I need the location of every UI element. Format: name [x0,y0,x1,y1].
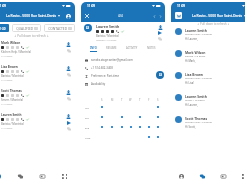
staticText: T [139,98,141,102]
staticText: Applied 11/1/2022 [96,38,117,41]
button[interactable]: Qualify [65,89,72,96]
button[interactable]: Mark Wilson [171,48,245,70]
button[interactable]: Lauren Smith [171,92,245,114]
staticText: 11:09 [87,4,96,8]
staticText: PM [85,116,89,119]
staticText: LS [86,26,90,30]
staticText: Hi Lauren, [185,103,198,107]
staticText: 11/1/2022 [1,102,13,105]
staticText: EVE [85,126,90,129]
staticText: QUALIFIED (0) [16,26,38,30]
staticText: Lisa Brown [185,72,203,76]
button[interactable]: CONTACTED (0) [44,24,75,32]
staticText: Kitchen Help / La Resto [185,120,213,123]
button[interactable]: Lisa Brown [0,63,75,87]
staticText: W [129,98,132,102]
staticText: Barista / Montréal [1,122,24,126]
button[interactable]: Qualify [65,65,72,72]
staticText: Kitchen Help / La Resto [185,32,213,35]
staticText: Scott Thomas [1,89,22,93]
button[interactable]: Chat with Lauren Smith [156,71,164,79]
button[interactable]: People [171,170,192,183]
button[interactable]: Previous [151,13,157,19]
staticText: NITE [85,136,91,139]
button[interactable]: Close [83,12,91,20]
staticText: sandra.stage.writer@gmail.com [91,58,133,62]
staticText: Preference: Part-time [91,74,119,78]
staticText: Availability [91,82,106,86]
button[interactable]: Message [157,36,163,42]
staticText: NEW (4) [0,26,6,30]
staticText: Mark Wilson [1,41,21,45]
staticText: La Resto - 5000 Rue Saint-Denis [192,13,243,18]
button[interactable]: Message [66,126,72,132]
staticText: Lisa Brown [1,65,18,69]
staticText: 11/1/2022 [1,54,13,57]
staticText: Barista / La Resto [185,54,206,57]
button[interactable]: People [0,170,9,183]
staticText: Hi Mark, [185,59,196,63]
button[interactable]: NOTES [147,46,156,52]
button[interactable]: Scott Thomas [171,114,245,136]
button[interactable]: Jobs [31,170,53,183]
button[interactable]: Mark Wilson [0,39,75,63]
staticText: F [148,98,150,102]
button[interactable]: Next [157,13,163,19]
staticText: INFO [90,46,97,50]
button[interactable]: INFO [90,46,97,52]
staticText: Server / Montréal [1,98,23,102]
staticText: LS [159,73,162,77]
button[interactable]: QUALIFIED (0) [12,24,41,32]
button[interactable]: Scott Thomas [0,87,75,111]
button[interactable]: Message [66,96,72,102]
staticText: Hi Lauren, [185,37,198,41]
staticText: AM [85,106,89,109]
staticText: 11:09 [0,4,7,8]
button[interactable]: Chat [192,170,213,183]
staticText: Mark Wilson [185,50,206,54]
staticText: 4/4 [118,14,123,18]
staticText: Kitchen Help / Montréal [1,50,31,54]
button[interactable]: Message [66,48,72,54]
button[interactable]: Lauren Smith [171,26,245,48]
button[interactable]: Message [66,72,72,78]
staticText: NOTES [147,46,156,50]
staticText: ↓ Pull down to refresh ↓ [197,22,230,26]
staticText: Lauren Smith [185,94,207,98]
button[interactable]: Jobs [213,170,234,183]
staticText: La Resto - 5000 Rue Saint-Denis [6,13,57,18]
button[interactable]: Qualify [157,24,163,30]
staticText: S [157,98,159,102]
staticText: M [111,98,114,102]
staticText: Hi Scott, [185,125,196,129]
staticText: RESUME [106,46,117,50]
staticText: 11/1/2022 [1,78,13,81]
staticText: Kitchen Help / La Resto [185,76,213,79]
button[interactable]: RESUME [106,46,117,52]
staticText: Barista / Montréal [96,34,119,38]
button[interactable]: Lisa Brown [171,70,245,92]
staticText: 11:09 [177,4,186,8]
staticText: Barista / Montréal [1,74,24,78]
staticText: T [121,98,123,102]
staticText: +1 514-602-3408 [91,66,113,70]
button[interactable]: More [234,170,245,183]
button[interactable]: Qualify [65,41,72,48]
button[interactable]: Lauren Smith [0,111,75,135]
button[interactable]: ACTIVITY [126,46,138,52]
staticText: ACTIVITY [126,46,138,50]
button[interactable]: Account [65,13,71,19]
button[interactable]: Chat [9,170,31,183]
button[interactable]: Logo [175,12,182,19]
button[interactable]: Play [157,30,163,36]
staticText: Server / La Resto [185,98,205,101]
button[interactable]: NEW (4) [0,24,9,32]
staticText: Lauren Smith [96,24,120,29]
button[interactable]: More [53,170,75,183]
staticText: 11/1/2022 [1,126,13,129]
button[interactable]: Qualify [65,113,72,120]
staticText: S [101,98,103,102]
button[interactable]: Play [66,120,72,126]
staticText: Hi Lisa! [185,81,195,85]
staticText: Lauren Smith [1,113,22,117]
